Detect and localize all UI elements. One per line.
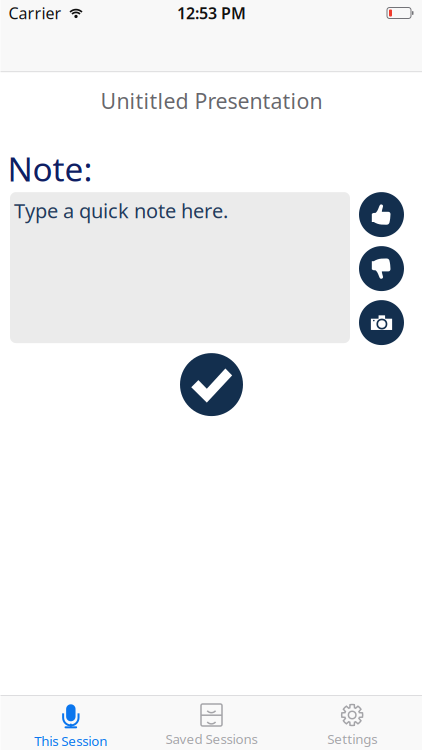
staticText: Settings: [327, 730, 377, 748]
staticText: 12:53 PM: [177, 2, 246, 24]
button[interactable]: Camera: [359, 300, 404, 345]
button[interactable]: Thumbs down: [359, 246, 404, 291]
staticText: Type a quick note here.: [14, 197, 228, 224]
staticText: Carrier: [8, 2, 61, 24]
button[interactable]: Save note: [180, 353, 243, 416]
staticText: Note:: [7, 146, 92, 191]
button[interactable]: Settings: [282, 695, 422, 750]
staticText: This Session: [34, 732, 107, 750]
button[interactable]: Saved Sessions: [141, 695, 282, 750]
button[interactable]: Thumbs up: [359, 192, 404, 237]
button[interactable]: Type a quick note here.: [10, 192, 350, 343]
staticText: Unititled Presentation: [100, 86, 322, 115]
button[interactable]: This Session: [0, 695, 141, 750]
staticText: Saved Sessions: [165, 730, 257, 748]
